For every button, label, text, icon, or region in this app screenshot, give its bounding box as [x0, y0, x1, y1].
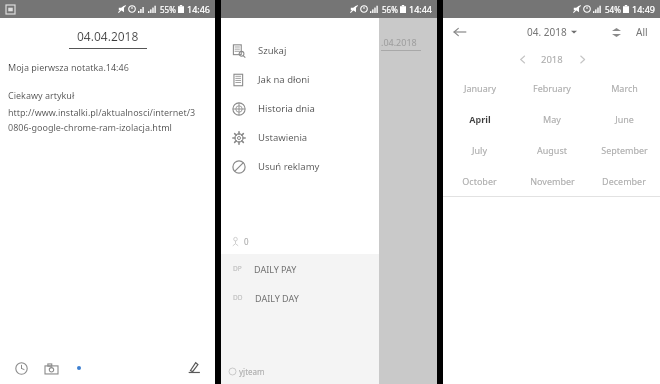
staticText: Moja pierwsza notatka.14:46 — [8, 61, 129, 73]
button[interactable]: Previous year — [513, 50, 531, 68]
button[interactable]: DD — [221, 283, 379, 312]
button[interactable]: September — [588, 134, 660, 165]
staticText: 56% — [382, 4, 398, 15]
staticText: 0 — [244, 236, 249, 247]
staticText: April — [469, 113, 491, 125]
staticText: All — [636, 25, 648, 39]
button[interactable]: Camera — [40, 357, 62, 379]
staticText: July — [472, 144, 487, 156]
staticText: March — [611, 82, 638, 94]
staticText: October — [462, 175, 497, 187]
button[interactable]: All — [632, 21, 652, 43]
staticText: 54% — [605, 4, 621, 15]
button[interactable]: DP — [221, 254, 379, 283]
staticText: November — [530, 175, 575, 187]
staticText: 55% — [160, 4, 176, 15]
button[interactable]: 04.04.2018 — [65, 26, 151, 46]
staticText: December — [602, 175, 646, 187]
button[interactable]: December — [588, 165, 660, 196]
staticText: Ciekawy artykuł — [8, 89, 75, 101]
staticText: 14:44 — [409, 3, 433, 15]
staticText: Usuń reklamy — [258, 160, 320, 173]
button[interactable]: Jak na dłoni — [221, 65, 379, 94]
button[interactable]: Color — [72, 361, 86, 375]
staticText: 04.04.2018 — [77, 28, 139, 44]
staticText: DAILY DAY — [255, 292, 299, 304]
staticText: 14:46 — [187, 3, 211, 15]
button[interactable]: October — [443, 165, 516, 196]
staticText: Szukaj — [258, 44, 287, 57]
staticText: May — [543, 113, 561, 125]
button[interactable]: January — [443, 72, 516, 103]
staticText: yjteam — [239, 366, 265, 377]
button[interactable]: August — [516, 134, 588, 165]
staticText: 0806-google-chrome-ram-izolacja.html — [8, 121, 172, 133]
button[interactable]: Sort — [606, 22, 626, 42]
button[interactable]: Historia dnia — [221, 94, 379, 123]
button[interactable]: April — [443, 103, 516, 134]
button[interactable]: Szukaj — [221, 36, 379, 65]
staticText: September — [601, 144, 648, 156]
button[interactable]: March — [588, 72, 660, 103]
staticText: 14:49 — [632, 3, 656, 15]
button[interactable]: May — [516, 103, 588, 134]
button[interactable]: Back — [449, 21, 471, 43]
button[interactable]: February — [516, 72, 588, 103]
button[interactable]: June — [588, 103, 660, 134]
staticText: DD — [233, 293, 243, 302]
button[interactable]: Ustawienia — [221, 123, 379, 152]
button[interactable]: 04. 2018 — [519, 22, 585, 42]
staticText: Ustawienia — [258, 131, 308, 144]
staticText: DP — [233, 264, 242, 273]
button[interactable]: Next year — [573, 50, 591, 68]
button[interactable]: July — [443, 134, 516, 165]
staticText: Jak na dłoni — [258, 73, 310, 86]
staticText: January — [464, 82, 496, 94]
button[interactable]: Usuń reklamy — [221, 152, 379, 181]
staticText: DAILY PAY — [254, 263, 297, 275]
button[interactable]: Sign — [183, 357, 205, 379]
staticText: 04. 2018 — [527, 25, 567, 39]
staticText: February — [533, 82, 571, 94]
button[interactable]: Add time — [10, 357, 32, 379]
staticText: .04.2018 — [381, 36, 417, 48]
staticText: 2018 — [541, 53, 563, 66]
staticText: http://www.instalki.pl/aktualnosci/inter… — [8, 106, 196, 118]
button[interactable]: November — [516, 165, 588, 196]
staticText: August — [537, 144, 567, 156]
staticText: June — [615, 113, 634, 125]
staticText: Historia dnia — [258, 102, 315, 115]
